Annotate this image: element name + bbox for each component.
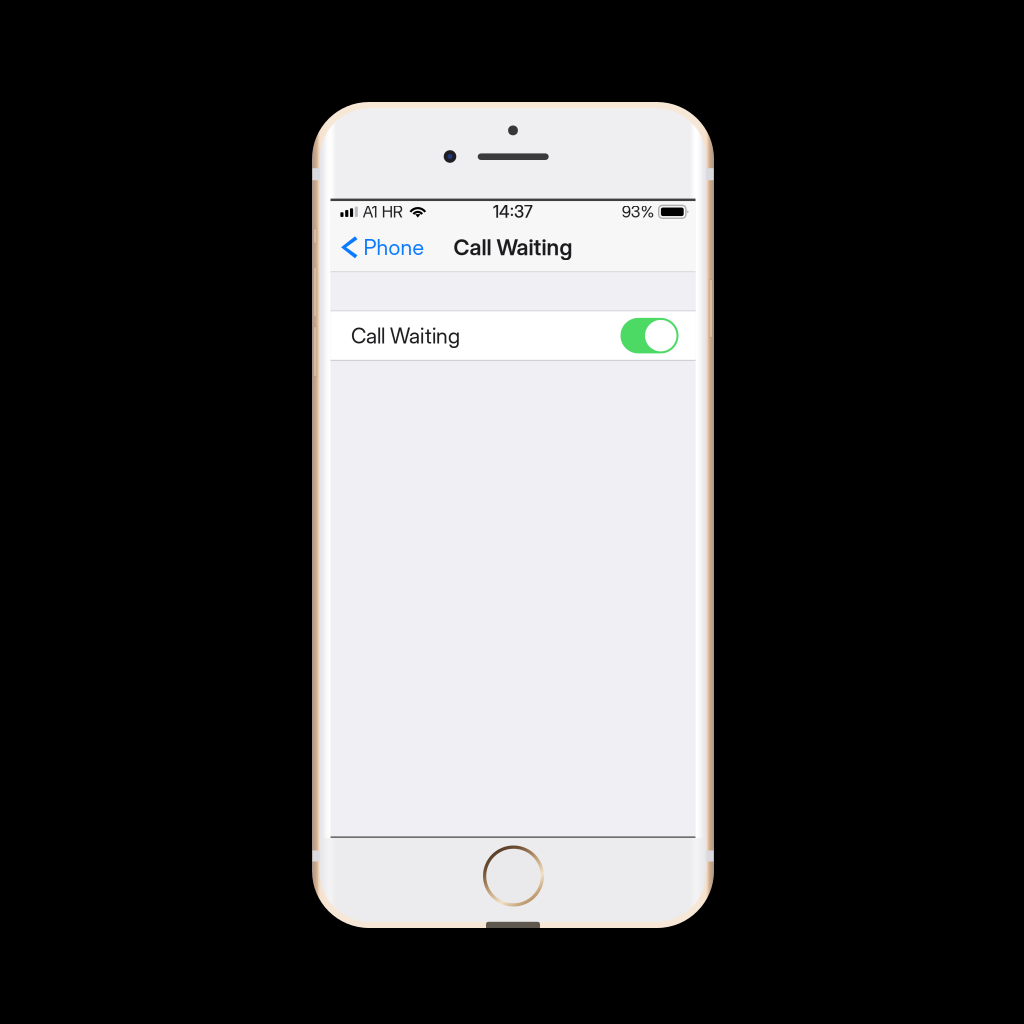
- button[interactable]: Call Waiting: [330, 311, 695, 360]
- button[interactable]: Phone: [330, 222, 433, 272]
- staticText: 93%: [622, 202, 655, 221]
- staticText: Call Waiting: [351, 323, 460, 348]
- staticText: 14:37: [493, 202, 533, 222]
- staticText: Call Waiting: [453, 234, 572, 261]
- staticText: A1 HR: [363, 202, 403, 221]
- staticText: Phone: [363, 234, 423, 260]
